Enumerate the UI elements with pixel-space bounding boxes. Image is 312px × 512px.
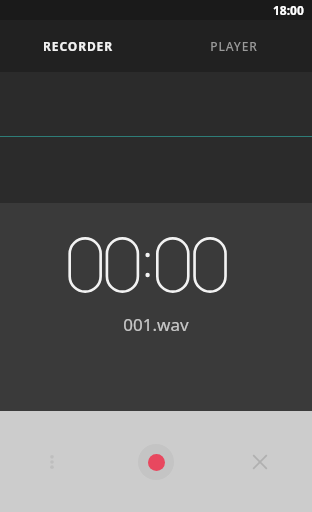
button[interactable]: RECORDER (0, 20, 156, 72)
button[interactable]: PLAYER (156, 20, 312, 72)
staticText: 001.wav (123, 313, 189, 336)
button[interactable]: Record (104, 411, 208, 512)
staticText: 18:00 (273, 2, 304, 18)
staticText: PLAYER (210, 38, 258, 54)
staticText: RECORDER (43, 38, 113, 54)
